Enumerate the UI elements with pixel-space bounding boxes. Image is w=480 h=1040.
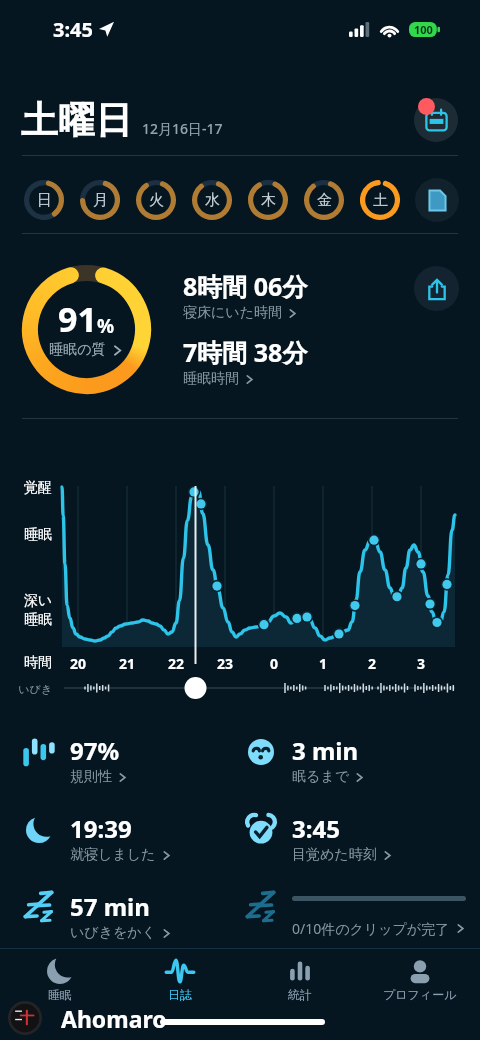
staticText: 覚醒 <box>0 479 52 497</box>
button[interactable]: 7時間 38分 <box>183 335 308 388</box>
button[interactable]: Share <box>414 266 459 311</box>
button[interactable]: Calendar <box>410 94 462 146</box>
staticText: 0 <box>254 654 294 673</box>
button[interactable]: 19:39 <box>22 802 232 858</box>
button[interactable]: 月 <box>78 178 122 222</box>
button[interactable]: 3:45 <box>244 802 454 858</box>
staticText: 3 <box>401 654 441 673</box>
staticText: 3:45 <box>53 16 93 43</box>
staticText: 眠るまで <box>292 768 349 786</box>
staticText: 0/10件のクリップが完了 <box>292 919 450 938</box>
button[interactable]: 水 <box>190 178 234 222</box>
button[interactable]: 睡眠 <box>0 949 120 1002</box>
staticText: 3:45 <box>292 812 340 845</box>
staticText: 時間 <box>0 654 52 672</box>
staticText: 睡眠 <box>0 526 52 544</box>
staticText: % <box>97 313 115 339</box>
button[interactable]: プロフィール <box>360 949 480 1002</box>
staticText: 7時間 38分 <box>183 335 308 369</box>
staticText: 2 <box>352 654 392 673</box>
staticText: 火 <box>149 191 164 210</box>
button[interactable]: 8時間 06分 <box>183 269 308 322</box>
staticText: 91 <box>58 296 97 342</box>
button[interactable]: 木 <box>246 178 290 222</box>
button[interactable]: 57 min <box>22 880 232 936</box>
staticText: 睡眠の質 <box>49 341 106 359</box>
staticText: 土曜日 <box>21 97 132 144</box>
staticText: 月 <box>93 191 108 210</box>
staticText: 23 <box>205 654 245 673</box>
staticText: 97% <box>70 734 120 767</box>
staticText: 目覚めた時刻 <box>292 846 377 864</box>
staticText: いびき <box>0 682 52 696</box>
staticText: 寝床にいた時間 <box>183 304 282 322</box>
staticText: 睡眠時間 <box>183 370 239 388</box>
button[interactable]: 火 <box>134 178 178 222</box>
button[interactable]: 金 <box>302 178 346 222</box>
staticText: 3 min <box>292 734 359 767</box>
button[interactable]: 3 min <box>244 724 454 780</box>
staticText: 日誌 <box>168 987 192 1002</box>
staticText: 規則性 <box>70 768 112 786</box>
staticText: 21 <box>107 654 147 673</box>
staticText: 睡眠 <box>48 987 72 1002</box>
staticText: 12月16日-17 <box>142 119 223 138</box>
staticText: 57 min <box>70 890 150 923</box>
staticText: 1 <box>303 654 343 673</box>
staticText: 統計 <box>288 987 312 1002</box>
staticText: 8時間 06分 <box>183 269 308 303</box>
staticText: 22 <box>156 654 196 673</box>
staticText: 木 <box>261 191 276 210</box>
staticText: 土 <box>373 191 388 210</box>
staticText: 深い 睡眠 <box>0 592 52 628</box>
button[interactable]: 日誌 <box>120 949 240 1002</box>
staticText: 金 <box>317 191 332 210</box>
staticText: 100 <box>414 22 433 37</box>
button[interactable]: 日 <box>22 178 66 222</box>
button[interactable]: Notes <box>415 178 459 222</box>
staticText: 20 <box>58 654 98 673</box>
button[interactable]: 土 <box>358 178 402 222</box>
staticText: 日 <box>37 191 52 210</box>
button[interactable]: 0/10件のクリップが完了 <box>244 880 466 936</box>
staticText: 就寝しました <box>70 846 156 864</box>
staticText: Ahomaro <box>61 1003 167 1034</box>
staticText: 水 <box>205 191 220 210</box>
button[interactable]: 統計 <box>240 949 360 1002</box>
button[interactable]: 97% <box>22 724 232 780</box>
staticText: いびきをかく <box>70 924 156 942</box>
staticText: 19:39 <box>70 812 132 845</box>
staticText: プロフィール <box>383 987 457 1002</box>
